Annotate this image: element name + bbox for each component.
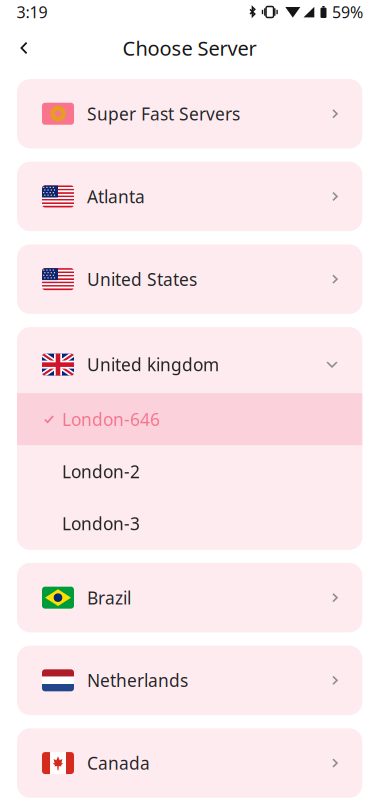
staticText: Netherlands (87, 669, 188, 692)
staticText: United kingdom (87, 353, 219, 376)
staticText: London-3 (62, 512, 140, 535)
button[interactable]: Super Fast Servers (17, 79, 362, 148)
staticText: London-646 (62, 408, 160, 431)
button[interactable]: Brazil (17, 563, 362, 632)
staticText: 3:19 (16, 1, 47, 23)
button[interactable]: United States (17, 244, 362, 314)
staticText: Brazil (87, 586, 131, 609)
staticText: London-2 (62, 460, 140, 483)
staticText: United States (87, 268, 197, 291)
button[interactable]: London-3 (17, 497, 362, 550)
button[interactable]: Canada (17, 728, 362, 798)
button[interactable]: United kingdom (17, 327, 362, 393)
button[interactable]: London-2 (17, 445, 362, 497)
button[interactable]: Back (0, 26, 48, 70)
button[interactable]: Netherlands (17, 646, 362, 715)
staticText: 59% (332, 1, 363, 23)
button[interactable]: London-646 (17, 393, 362, 445)
staticText: Atlanta (87, 185, 145, 208)
button[interactable]: Atlanta (17, 162, 362, 231)
staticText: Canada (87, 751, 150, 774)
staticText: Choose Server (122, 35, 256, 61)
staticText: Super Fast Servers (87, 102, 240, 125)
